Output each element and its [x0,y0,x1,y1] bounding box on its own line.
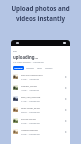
staticText: x [65,86,67,90]
staticText: 3 of 18 files uploading - 2 minutes left [13,61,44,63]
button[interactable]: Cancel upload [64,75,68,79]
staticText: Small-stories_02.jpg [21,107,40,110]
button[interactable]: Uploaded [25,66,35,70]
staticText: x [65,130,67,134]
button[interactable]: Portrait-sun.jpg [11,115,70,126]
button[interactable]: Cancel upload [64,86,68,90]
staticText: x [65,108,67,112]
staticText: 2.0 MB - 5 minutes left [21,133,40,135]
staticText: Audience-bike.jpg [21,129,38,132]
button[interactable]: Canceled [44,66,54,70]
staticText: 2.4 MB - 1 minute left [21,78,39,80]
staticText: uploading... [13,54,39,60]
button[interactable]: Cancel upload [64,130,68,134]
staticText: Upload photos and videos instantly [0,4,81,22]
staticText: x [65,75,67,79]
button[interactable]: Cancel upload [64,97,68,101]
button[interactable]: Uploading [13,66,24,70]
staticText: 4.1 MB - 2 minutes left [21,100,40,102]
button[interactable]: Cancel upload [64,108,68,112]
staticText: Desk_card_print.png [21,96,41,99]
staticText: 3.2 MB - 4 minutes left [21,122,40,124]
staticText: x [65,119,67,123]
staticText: Portrait-sun.jpg [21,118,36,121]
staticText: Cabinets_still.jpg [21,85,37,88]
button[interactable]: Kitty-trail-cookout.mp4 [11,71,70,82]
button[interactable]: Account [63,42,66,44]
button[interactable]: Small-stories_02.jpg [11,104,70,115]
staticText: Uploading [14,67,23,69]
button[interactable]: Desk_card_print.png [11,93,70,104]
staticText: 1.8 MB - 1 minute left [21,89,39,91]
staticText: 920 KB - 3 minutes left [21,111,40,113]
staticText: x [65,97,67,101]
staticText: Kitty-trail-cookout.mp4 [21,74,43,77]
button[interactable]: Audience-bike.jpg [11,126,70,137]
button[interactable]: Cancel upload [64,119,68,123]
button[interactable]: Failed [36,66,43,70]
button[interactable]: Cabinets_still.jpg [11,82,70,93]
staticText: files [13,50,17,53]
